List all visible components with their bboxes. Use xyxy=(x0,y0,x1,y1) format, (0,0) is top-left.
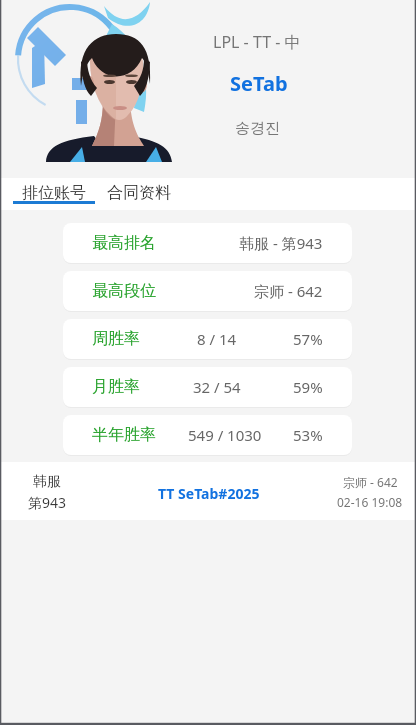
staticText: 半年胜率 xyxy=(92,425,156,445)
staticText: 最高段位 xyxy=(92,281,156,301)
staticText: 59% xyxy=(293,377,323,397)
button[interactable]: 最高排名 xyxy=(63,223,352,263)
staticText: 第943 xyxy=(28,493,67,512)
staticText: 最高排名 xyxy=(92,233,156,253)
staticText: TT SeTab#2025 xyxy=(158,484,260,503)
button[interactable]: 韩服 xyxy=(0,462,416,520)
button[interactable]: 排位账号 xyxy=(13,178,95,210)
staticText: 韩服 - 第943 xyxy=(239,233,323,253)
staticText: LPL - TT - 中 xyxy=(213,31,301,53)
staticText: 宗师 - 642 xyxy=(343,474,398,490)
staticText: 53% xyxy=(293,425,323,445)
staticText: 송경진 xyxy=(235,119,280,138)
staticText: 549 / 1030 xyxy=(188,425,262,445)
staticText: 8 / 14 xyxy=(197,329,237,349)
button[interactable]: 半年胜率 xyxy=(63,415,352,455)
staticText: 月胜率 xyxy=(92,377,140,397)
button[interactable]: 最高段位 xyxy=(63,271,352,311)
button[interactable]: 月胜率 xyxy=(63,367,352,407)
staticText: 02-16 19:08 xyxy=(337,494,403,510)
staticText: 排位账号 xyxy=(22,183,86,203)
staticText: 57% xyxy=(293,329,323,349)
button[interactable]: 合同资料 xyxy=(103,178,175,210)
staticText: 韩服 xyxy=(33,473,61,491)
staticText: 宗师 - 642 xyxy=(254,281,323,301)
staticText: SeTab xyxy=(230,70,288,97)
button[interactable]: 周胜率 xyxy=(63,319,352,359)
staticText: 合同资料 xyxy=(107,183,171,203)
staticText: 32 / 54 xyxy=(193,377,241,397)
staticText: 周胜率 xyxy=(92,329,140,349)
